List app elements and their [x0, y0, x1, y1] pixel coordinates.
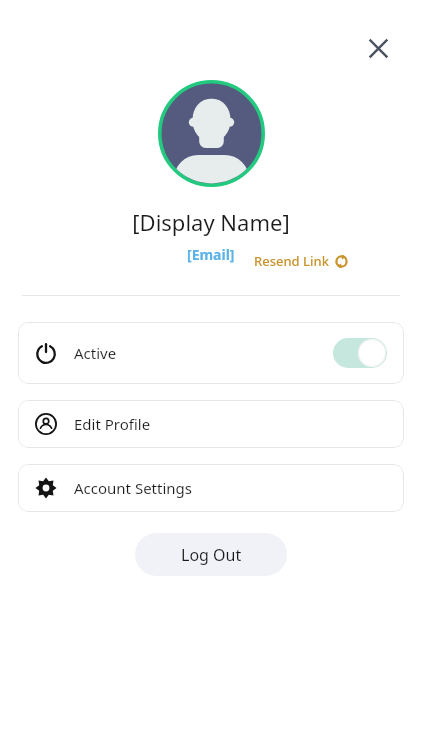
staticText: Edit Profile — [74, 414, 151, 434]
staticText: Account Settings — [74, 478, 192, 498]
button[interactable]: Account Settings — [18, 464, 404, 512]
staticText: Resend Link — [254, 252, 329, 270]
button[interactable]: Resend Link — [250, 250, 354, 272]
button[interactable]: Close — [356, 26, 400, 70]
button[interactable]: Edit Profile — [18, 400, 404, 448]
staticText: Log Out — [181, 544, 242, 566]
staticText: Active — [74, 343, 117, 363]
button[interactable]: [Email] — [183, 244, 239, 265]
button[interactable]: Active toggle — [333, 338, 387, 368]
button[interactable]: Active — [18, 322, 404, 384]
button[interactable]: Log Out — [135, 533, 287, 576]
staticText: [Email] — [187, 245, 235, 264]
staticText: [Display Name] — [132, 207, 290, 237]
